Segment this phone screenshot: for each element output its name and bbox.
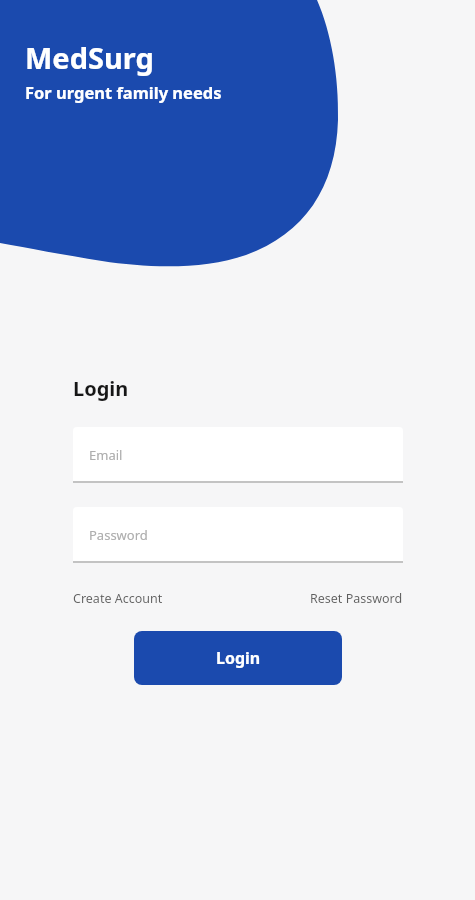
- button[interactable]: Create Account: [73, 586, 163, 610]
- button[interactable]: Password: [73, 507, 403, 563]
- staticText: Reset Password: [310, 590, 403, 606]
- staticText: Create Account: [73, 590, 163, 606]
- button[interactable]: Reset Password: [310, 586, 403, 610]
- staticText: For urgent family needs: [25, 81, 222, 103]
- staticText: MedSurg: [25, 38, 154, 77]
- staticText: Login: [73, 375, 129, 402]
- button[interactable]: Email: [73, 427, 403, 483]
- staticText: Email: [89, 446, 123, 464]
- staticText: Password: [89, 526, 148, 544]
- staticText: Login: [216, 647, 261, 669]
- button[interactable]: Login: [134, 631, 342, 685]
